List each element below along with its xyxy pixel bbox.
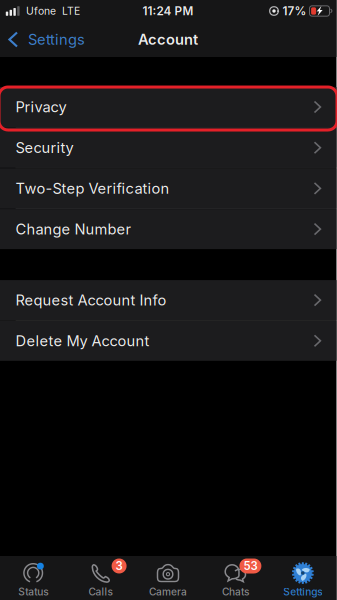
staticText: 53 — [243, 559, 257, 573]
button[interactable]: Status — [0, 556, 67, 600]
staticText: Settings — [28, 31, 85, 48]
button[interactable]: Request Account Info — [0, 280, 336, 320]
staticText: Request Account Info — [15, 291, 166, 309]
staticText: 17% — [279, 4, 309, 18]
button[interactable]: Change Number — [0, 209, 336, 249]
button[interactable]: Privacy — [0, 87, 336, 127]
staticText: Calls — [89, 586, 113, 598]
staticText: Change Number — [15, 220, 131, 238]
staticText: 3 — [116, 559, 123, 573]
staticText: Chats — [222, 586, 249, 598]
staticText: Two-Step Verification — [15, 179, 169, 197]
staticText: Settings — [283, 586, 322, 598]
button[interactable]: 3 — [67, 556, 134, 600]
button[interactable]: Camera — [134, 556, 202, 600]
staticText: Camera — [149, 586, 187, 598]
button[interactable]: Settings — [269, 556, 336, 600]
staticText: Account — [138, 31, 198, 48]
button[interactable]: Settings — [0, 22, 95, 57]
staticText: Ufone — [20, 5, 56, 17]
staticText: Privacy — [15, 98, 66, 116]
button[interactable]: Security — [0, 128, 336, 168]
staticText: Security — [15, 139, 73, 156]
staticText: 11:24 PM — [142, 4, 193, 18]
staticText: Status — [18, 586, 48, 598]
button[interactable]: Delete My Account — [0, 321, 336, 361]
staticText: Delete My Account — [15, 332, 149, 350]
staticText: LTE — [56, 5, 80, 17]
button[interactable]: 53 — [202, 556, 269, 600]
button[interactable]: Two-Step Verification — [0, 168, 336, 208]
